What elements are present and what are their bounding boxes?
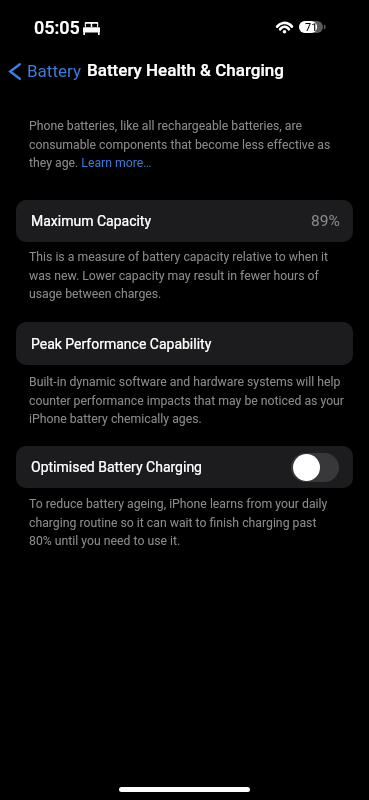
- staticText: 89%: [311, 212, 340, 230]
- button[interactable]: Learn more about battery health: [79, 155, 151, 173]
- staticText: Phone batteries, like all rechargeable b…: [29, 119, 342, 170]
- staticText: Battery: [27, 61, 81, 81]
- staticText: Maximum Capacity: [31, 213, 152, 229]
- staticText: This is a measure of battery capacity re…: [29, 250, 342, 301]
- staticText: To reduce battery ageing, iPhone learns …: [29, 497, 342, 548]
- button[interactable]: Maximum Capacity: [16, 200, 353, 242]
- button[interactable]: Optimised Battery Charging: [16, 446, 353, 488]
- staticText: Peak Performance Capability: [31, 336, 212, 352]
- button[interactable]: Battery: [5, 57, 87, 85]
- button[interactable]: Peak Performance Capability: [16, 322, 353, 365]
- button[interactable]: Optimised Battery Charging: [291, 453, 339, 482]
- staticText: 05:05: [34, 17, 80, 38]
- staticText: Battery Health & Charging: [87, 60, 284, 80]
- staticText: Built-in dynamic software and hardware s…: [29, 375, 345, 426]
- staticText: 71: [305, 21, 318, 33]
- staticText: Optimised Battery Charging: [31, 459, 202, 475]
